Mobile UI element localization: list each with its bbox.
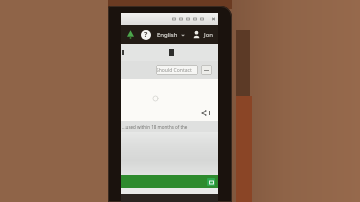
button[interactable]: Toolbar button	[172, 17, 176, 21]
staticText: Jonathan	[204, 31, 214, 39]
button[interactable]: Toolbar button	[186, 17, 190, 21]
button[interactable]: Export	[207, 178, 215, 186]
button[interactable]: Toolbar button	[193, 17, 197, 21]
staticText: Should Contact Date	[156, 67, 198, 74]
button[interactable]: Close window	[211, 16, 216, 22]
button[interactable]: Home	[125, 29, 136, 40]
button[interactable]: Jonathan	[192, 30, 214, 39]
button[interactable]: Search	[201, 65, 212, 75]
button[interactable]: English	[156, 31, 186, 39]
staticText: ...used within 18 months of the manufact…	[122, 124, 218, 130]
button[interactable]: Help	[141, 30, 151, 40]
staticText: ?	[144, 30, 148, 40]
button[interactable]: Toolbar button	[200, 17, 204, 21]
button[interactable]: Toolbar button	[179, 17, 183, 21]
button[interactable]: Export	[121, 175, 218, 188]
button[interactable]: Should Contact Date	[156, 65, 198, 75]
staticText: English	[157, 31, 178, 39]
button[interactable]: Share	[201, 110, 210, 116]
